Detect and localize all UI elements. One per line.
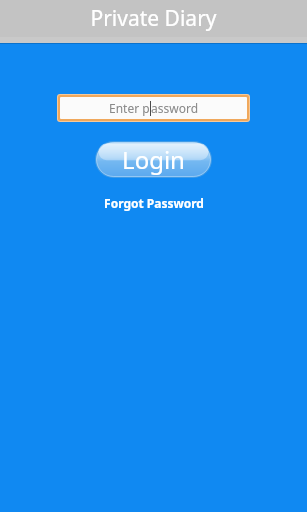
staticText: assword (151, 100, 199, 116)
button[interactable]: Enter p (57, 94, 250, 122)
staticText: Forgot Password (104, 195, 204, 211)
staticText: Login (122, 143, 185, 176)
staticText: Private Diary (90, 4, 217, 33)
staticText: Enter p (109, 100, 150, 116)
button[interactable]: Forgot Password (96, 192, 212, 214)
button[interactable]: Login (95, 141, 212, 178)
